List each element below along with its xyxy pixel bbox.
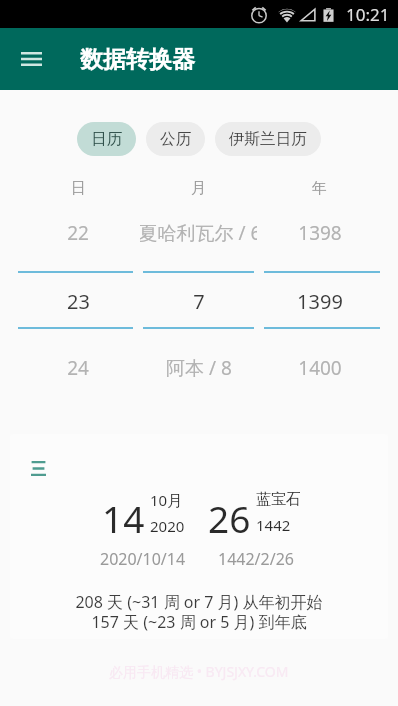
button[interactable]: Details bbox=[10, 434, 388, 639]
staticText: 208 天 (~31 周 or 7 月) 从年初开始 157 天 (~23 周 … bbox=[10, 591, 388, 633]
staticText: 10月 bbox=[150, 490, 183, 510]
staticText: 伊斯兰日历 bbox=[229, 129, 307, 149]
staticText: 月 bbox=[191, 179, 206, 198]
staticText: 必用手机精选 • BYJSJXY.COM bbox=[109, 662, 289, 681]
staticText: 24 bbox=[67, 355, 89, 377]
staticText: 26 bbox=[208, 493, 251, 543]
button[interactable]: 日 bbox=[18, 179, 138, 198]
staticText: 日 bbox=[71, 179, 86, 198]
button[interactable]: 日历 bbox=[77, 122, 136, 156]
staticText: 蓝宝石 bbox=[256, 490, 301, 509]
button[interactable]: 公历 bbox=[146, 122, 205, 156]
staticText: 1442 bbox=[256, 515, 291, 535]
staticText: 23 bbox=[67, 288, 90, 310]
staticText: 夏哈利瓦尔 / 6 bbox=[140, 220, 257, 242]
staticText: 10:21 bbox=[346, 3, 390, 26]
staticText: 日历 bbox=[91, 129, 122, 149]
staticText: 7 bbox=[193, 288, 205, 310]
staticText: 阿本 / 8 bbox=[166, 355, 232, 377]
button[interactable]: 伊斯兰日历 bbox=[215, 122, 321, 156]
staticText: 年 bbox=[312, 179, 327, 198]
button[interactable]: Details bbox=[28, 459, 48, 477]
staticText: 22 bbox=[67, 220, 89, 242]
staticText: 2020 bbox=[150, 516, 185, 536]
staticText: 数据转换器 bbox=[80, 45, 195, 74]
staticText: 公历 bbox=[160, 129, 191, 149]
staticText: 2020/10/14 bbox=[100, 548, 186, 570]
staticText: 1400 bbox=[298, 355, 342, 377]
button[interactable]: Menu bbox=[9, 37, 53, 81]
staticText: 14 bbox=[102, 493, 145, 543]
staticText: 1442/2/26 bbox=[218, 548, 294, 570]
staticText: 1399 bbox=[297, 288, 343, 310]
staticText: 1398 bbox=[298, 220, 342, 242]
button[interactable]: 月 bbox=[138, 179, 259, 198]
button[interactable]: 年 bbox=[259, 179, 380, 198]
